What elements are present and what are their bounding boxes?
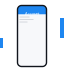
staticText: Account xyxy=(25,11,39,16)
